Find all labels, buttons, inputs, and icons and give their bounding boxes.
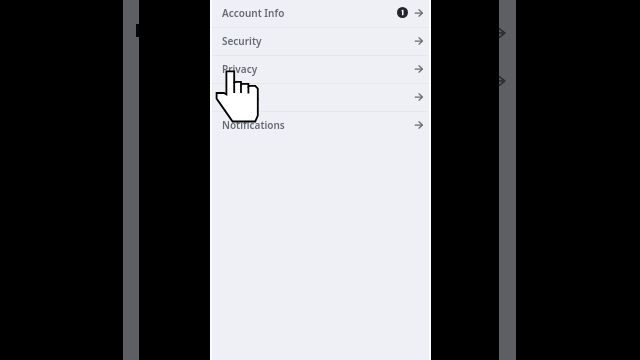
button[interactable]: Privacy <box>212 56 428 84</box>
button[interactable]: Security <box>212 28 428 56</box>
staticText: Privacy <box>222 62 258 76</box>
staticText: Account Info <box>222 6 285 20</box>
other: Open Security <box>415 37 423 45</box>
other: Open Devices <box>415 93 423 101</box>
button[interactable]: Notifications <box>212 112 428 140</box>
button[interactable]: Account Info <box>212 0 428 28</box>
other: Open Account Info <box>415 9 423 17</box>
staticText: Security <box>222 34 262 48</box>
other: Open Privacy <box>415 65 423 73</box>
button[interactable]: Devices <box>212 84 428 112</box>
other: Open Notifications <box>415 121 423 129</box>
staticText: Devices <box>222 90 260 104</box>
staticText: Notifications <box>222 118 285 132</box>
